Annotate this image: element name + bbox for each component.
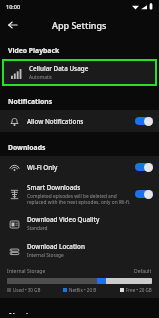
staticText: Standard: [27, 225, 48, 232]
button[interactable]: Toggle: [135, 116, 153, 126]
staticText: Allow Notifications: [27, 117, 84, 126]
staticText: Netflix • 20 B: [69, 287, 97, 293]
staticText: Smart Downloads: [27, 183, 81, 192]
staticText: Completed episodes will be deleted and r…: [27, 193, 131, 205]
button[interactable]: Toggle: [135, 162, 153, 172]
button[interactable]: Wi-Fi Only: [0, 156, 159, 178]
button[interactable]: Cellular Data Usage: [2, 59, 157, 86]
staticText: Default: [134, 268, 152, 275]
button[interactable]: Allow Notifications: [0, 110, 159, 132]
button[interactable]: Back: [5, 17, 21, 33]
staticText: Automatic: [29, 74, 53, 81]
staticText: Cellular Data Usage: [29, 64, 89, 73]
staticText: About: [8, 311, 29, 314]
button[interactable]: Smart Downloads: [0, 178, 159, 210]
staticText: App Settings: [52, 19, 107, 31]
staticText: Download Location: [27, 242, 85, 251]
staticText: Wi-Fi Only: [27, 163, 58, 172]
staticText: Video Playback: [8, 46, 60, 55]
staticText: Notifications: [8, 97, 53, 106]
staticText: Download Video Quality: [27, 215, 100, 224]
staticText: Internal Storage: [7, 268, 46, 275]
staticText: Used • 30 GB: [13, 287, 41, 293]
button[interactable]: Download Video Quality: [0, 210, 159, 237]
staticText: Free • 20 GB: [126, 287, 152, 293]
button[interactable]: Toggle: [135, 189, 153, 199]
staticText: Downloads: [8, 143, 46, 152]
staticText: Internal Storage: [27, 252, 64, 259]
staticText: 10:00: [6, 3, 21, 10]
button[interactable]: Download Location: [0, 237, 159, 264]
